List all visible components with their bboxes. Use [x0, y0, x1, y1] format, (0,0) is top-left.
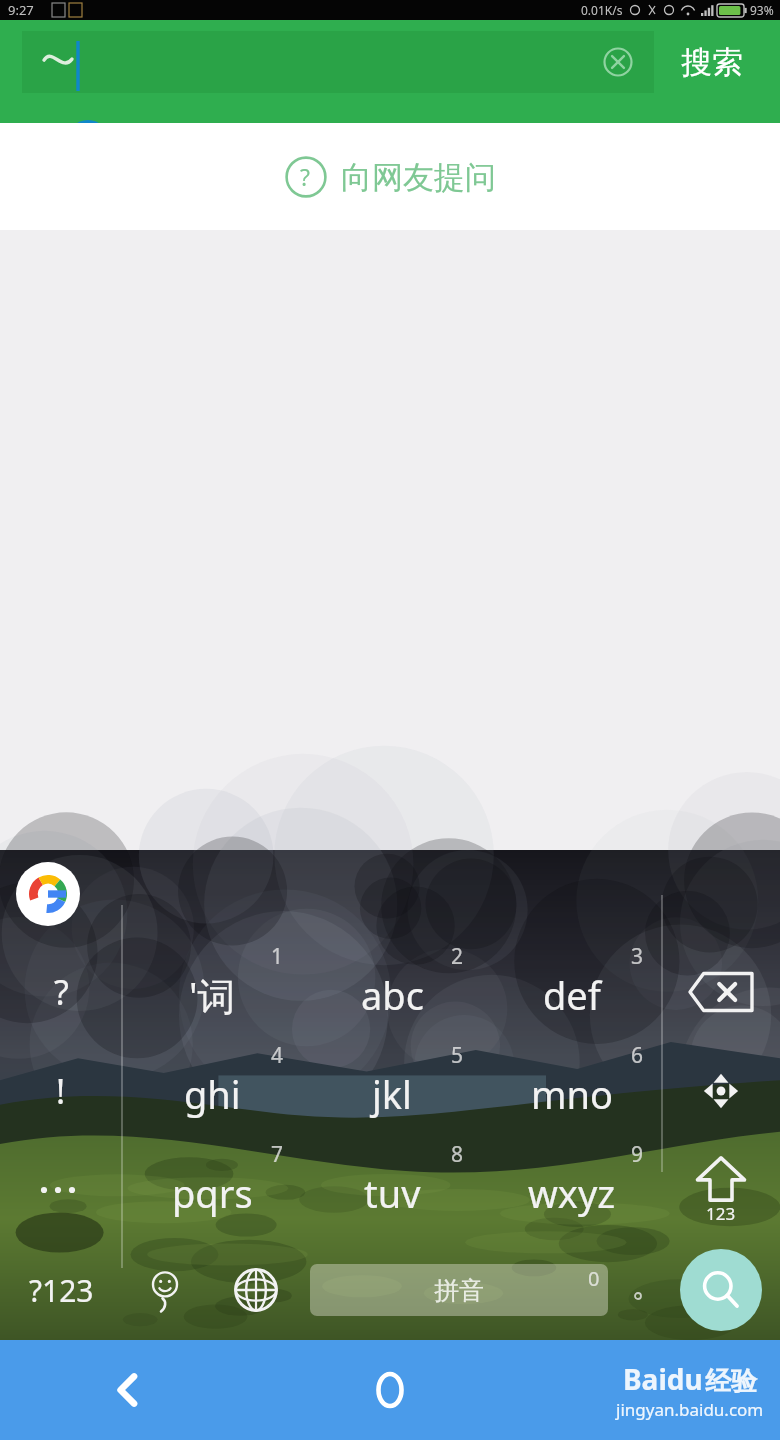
- button[interactable]: ?: [0, 123, 780, 230]
- staticText: wxyz: [528, 1167, 616, 1219]
- button[interactable]: mno: [482, 1041, 662, 1140]
- staticText: 1: [271, 942, 284, 971]
- staticText: 拼音: [434, 1275, 484, 1306]
- button[interactable]: Emoji: [122, 1240, 208, 1340]
- staticText: 向网友提问: [341, 158, 496, 197]
- button[interactable]: Clear: [594, 38, 642, 86]
- staticText: 4: [271, 1041, 284, 1070]
- staticText: jingyan.baidu.com: [616, 1398, 764, 1421]
- staticText: !: [56, 1068, 66, 1114]
- staticText: 经验: [705, 1365, 757, 1398]
- button[interactable]: 搜索: [654, 31, 770, 93]
- staticText: 9:27: [8, 1, 34, 19]
- button[interactable]: !: [0, 1041, 122, 1140]
- staticText: 123: [706, 1202, 736, 1225]
- button[interactable]: Shift: [662, 1140, 780, 1240]
- staticText: 5: [451, 1041, 464, 1070]
- staticText: abc: [361, 969, 424, 1021]
- button[interactable]: Backspace: [662, 942, 780, 1041]
- button[interactable]: jkl: [302, 1041, 482, 1140]
- staticText: tuv: [364, 1167, 421, 1219]
- button[interactable]: Search: [662, 1240, 780, 1340]
- button[interactable]: ?: [0, 942, 122, 1041]
- button[interactable]: Clear: [22, 31, 654, 93]
- staticText: Baidu: [623, 1360, 703, 1398]
- staticText: '词: [189, 969, 236, 1021]
- staticText: 9: [631, 1140, 644, 1169]
- button[interactable]: [0, 1140, 122, 1240]
- staticText: 6: [631, 1041, 644, 1070]
- button[interactable]: wxyz: [482, 1140, 662, 1240]
- staticText: ?: [300, 161, 310, 192]
- button[interactable]: '词: [122, 942, 302, 1041]
- staticText: 8: [451, 1140, 464, 1169]
- staticText: 0.01K/s: [581, 2, 623, 18]
- staticText: 7: [271, 1140, 284, 1169]
- button[interactable]: Back: [92, 1354, 164, 1426]
- button[interactable]: Change language: [208, 1240, 304, 1340]
- staticText: 93%: [750, 2, 774, 18]
- staticText: 2: [451, 942, 464, 971]
- button[interactable]: Move cursor: [662, 1041, 780, 1140]
- button[interactable]: Home: [354, 1354, 426, 1426]
- staticText: 0: [588, 1265, 600, 1292]
- staticText: ?: [54, 969, 69, 1015]
- button[interactable]: def: [482, 942, 662, 1041]
- staticText: pqrs: [172, 1167, 253, 1219]
- staticText: ?123: [29, 1270, 94, 1311]
- button[interactable]: 拼音: [310, 1264, 608, 1316]
- staticText: ghi: [184, 1068, 241, 1120]
- button[interactable]: abc: [302, 942, 482, 1041]
- button[interactable]: ?123: [0, 1240, 122, 1340]
- staticText: def: [543, 969, 601, 1021]
- button[interactable]: [614, 1240, 662, 1340]
- staticText: 3: [631, 942, 644, 971]
- staticText: jkl: [372, 1068, 412, 1120]
- staticText: 搜索: [681, 43, 743, 82]
- button[interactable]: tuv: [302, 1140, 482, 1240]
- staticText: mno: [531, 1068, 614, 1120]
- button[interactable]: ghi: [122, 1041, 302, 1140]
- button[interactable]: Google: [16, 862, 80, 926]
- button[interactable]: pqrs: [122, 1140, 302, 1240]
